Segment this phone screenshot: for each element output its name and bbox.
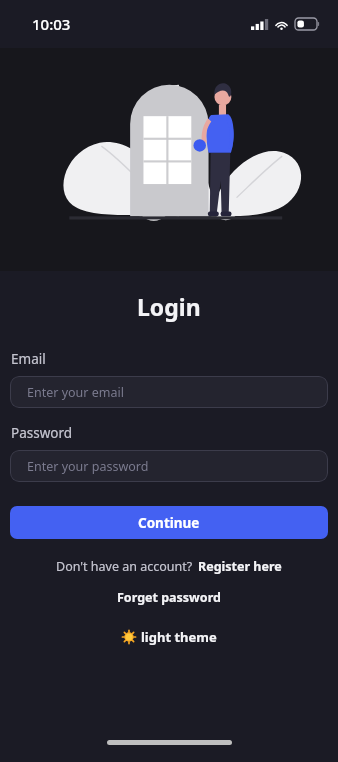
staticText: Password [11,424,73,442]
button[interactable]: Switch to light theme [116,625,223,649]
staticText: Continue [138,514,200,532]
button[interactable]: Enter your password [10,450,328,482]
staticText: Forget password [117,589,221,606]
staticText: Email [11,350,46,368]
button[interactable]: Enter your email [10,376,328,408]
staticText: light theme [141,628,217,646]
button[interactable]: Register here [198,555,282,578]
staticText: Login [137,291,201,322]
staticText: Enter your password [27,458,149,475]
button[interactable]: Forget password [109,586,229,609]
staticText: Enter your email [27,384,124,401]
button[interactable]: Continue [10,506,328,539]
staticText: Register here [198,558,282,575]
staticText: 10:03 [32,14,71,34]
staticText: Don't have an account? [56,558,193,575]
